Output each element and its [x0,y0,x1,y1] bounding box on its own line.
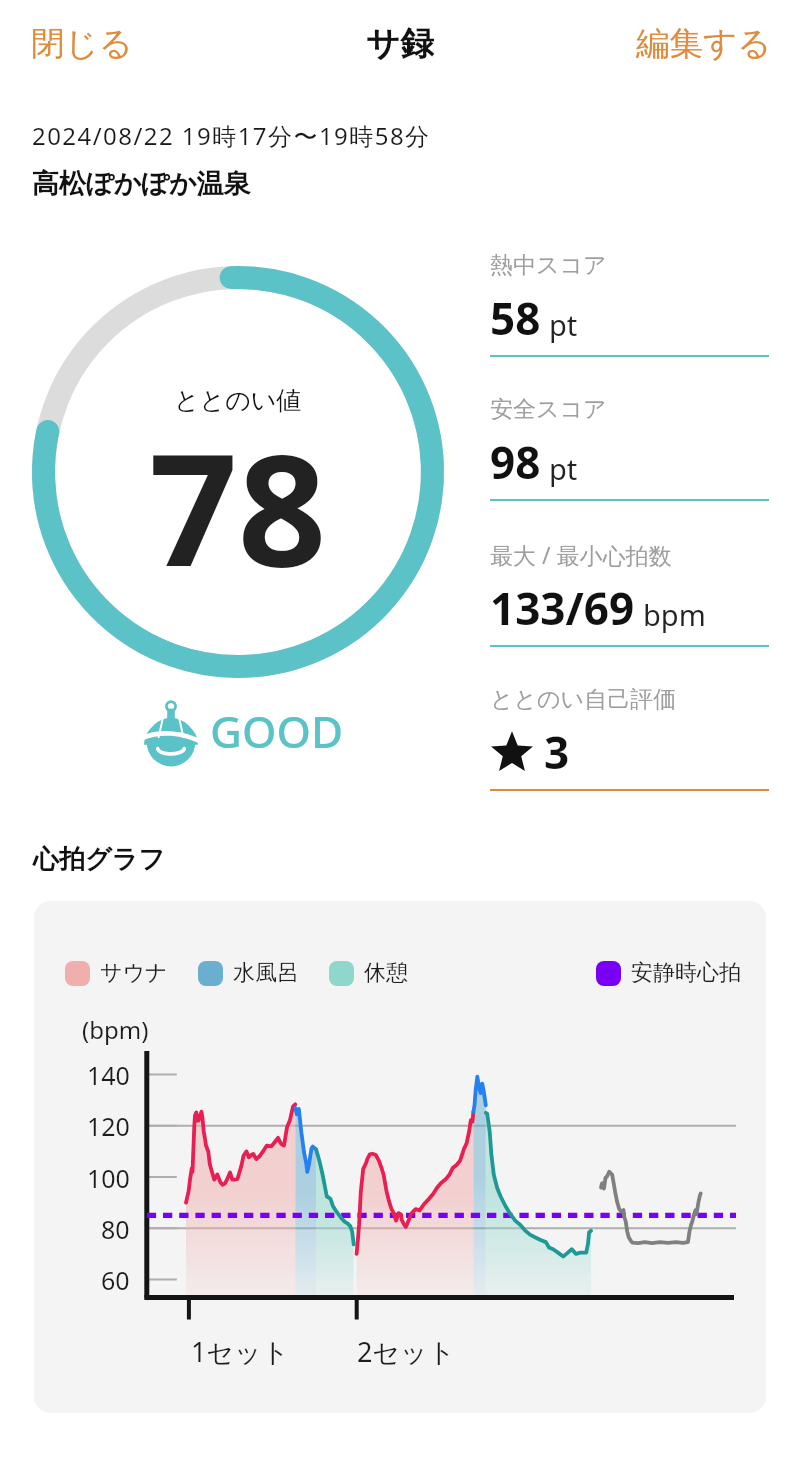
staticText: 高松ぽかぽか温泉 [32,167,251,201]
staticText: 閉じる [31,23,134,65]
staticText: 140 [87,1058,130,1092]
staticText: 100 [87,1161,130,1195]
staticText: サウナ [100,959,168,987]
staticText: 60 [101,1263,130,1297]
staticText: 安静時心拍 [631,959,741,987]
staticText: 58 [490,288,541,348]
button[interactable]: 閉じる [17,13,148,75]
staticText: (bpm) [82,1013,149,1046]
staticText: 水風呂 [233,959,299,987]
button[interactable]: 編集する [622,13,786,75]
staticText: 80 [101,1212,130,1246]
staticText: サ録 [366,23,434,65]
staticText: 3 [544,722,570,782]
staticText: 心拍グラフ [33,843,165,876]
staticText: ととのい自己評価 [490,685,677,714]
staticText: pt [549,449,578,488]
staticText: 1セット [191,1333,290,1370]
staticText: 2セット [357,1333,456,1370]
staticText: 編集する [636,23,772,65]
staticText: 安全スコア [490,395,607,424]
staticText: ととのい値 [174,385,302,416]
staticText: 133/69 [490,578,635,638]
staticText: pt [549,305,578,344]
staticText: 78 [149,400,327,611]
staticText: 最大 / 最小心拍数 [490,539,672,570]
staticText: 120 [87,1109,130,1143]
staticText: 休憩 [364,959,408,987]
staticText: 98 [490,432,541,492]
staticText: 熱中スコア [490,251,607,280]
staticText: bpm [643,595,706,634]
staticText: GOOD [210,701,344,761]
staticText: 2024/08/22 19時17分〜19時58分 [32,119,431,152]
